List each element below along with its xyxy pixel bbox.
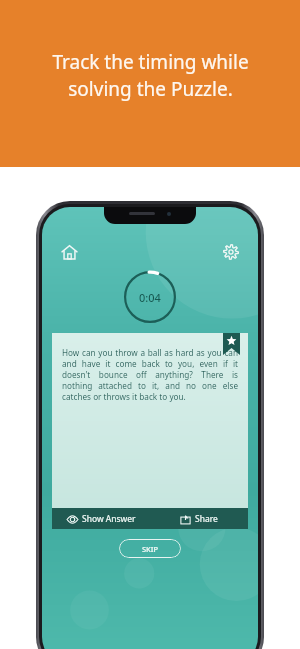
staticText: Show Answer <box>82 513 136 525</box>
button[interactable]: Settings <box>218 239 244 265</box>
button[interactable]: Home <box>56 239 82 265</box>
staticText: How can you throw a ball as hard as you … <box>62 347 238 402</box>
button[interactable]: Share <box>150 513 248 525</box>
staticText: SKIP <box>142 544 159 554</box>
staticText: Share <box>195 513 218 525</box>
staticText: Track the timing while solving the Puzzl… <box>52 49 249 102</box>
button[interactable]: Bookmark <box>223 333 240 355</box>
button[interactable]: Timer 0:04 <box>124 271 176 323</box>
button[interactable]: SKIP <box>119 539 181 558</box>
button[interactable]: Show Answer <box>52 513 150 525</box>
button[interactable]: How can you throw a ball as hard as you … <box>52 333 248 508</box>
staticText: 0:04 <box>139 290 161 305</box>
